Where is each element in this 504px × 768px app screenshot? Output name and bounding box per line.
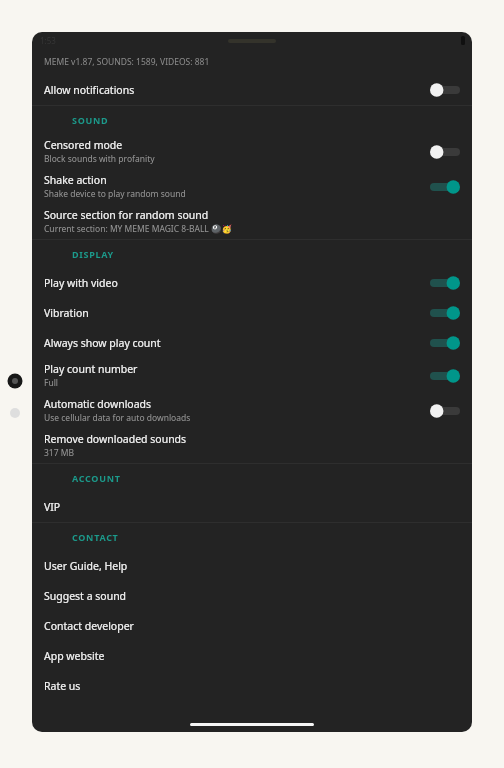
staticText: 317 MB bbox=[44, 447, 75, 459]
button[interactable]: Always show play count bbox=[32, 328, 472, 358]
button[interactable]: Toggle Allow notifications bbox=[426, 78, 464, 102]
button[interactable]: Source section for random sound bbox=[32, 204, 472, 239]
staticText: Current section: MY MEME MAGIC 8-BALL 🎱🥳 bbox=[44, 223, 233, 235]
button[interactable]: Automatic downloads bbox=[32, 393, 472, 428]
staticText: 1:53 bbox=[40, 35, 56, 46]
staticText: Play count number bbox=[44, 362, 138, 376]
button[interactable]: Toggle Vibration bbox=[426, 301, 464, 325]
staticText: Source section for random sound bbox=[44, 208, 209, 222]
staticText: ACCOUNT bbox=[72, 472, 121, 484]
staticText: VIP bbox=[44, 500, 61, 514]
staticText: CONTACT bbox=[72, 531, 119, 543]
staticText: Suggest a sound bbox=[44, 589, 127, 603]
staticText: Shake action bbox=[44, 173, 107, 187]
button[interactable]: Censored mode bbox=[32, 134, 472, 169]
staticText: Shake device to play random sound bbox=[44, 188, 186, 200]
button[interactable]: Rate us bbox=[32, 671, 472, 701]
staticText: DISPLAY bbox=[72, 248, 114, 260]
staticText: Vibration bbox=[44, 306, 89, 320]
staticText: Rate us bbox=[44, 679, 81, 693]
staticText: Automatic downloads bbox=[44, 397, 152, 411]
staticText: Remove downloaded sounds bbox=[44, 432, 187, 446]
button[interactable]: Contact developer bbox=[32, 611, 472, 641]
staticText: Play with video bbox=[44, 276, 118, 290]
staticText: MEME v1.87, SOUNDS: 1589, VIDEOS: 881 bbox=[44, 56, 210, 68]
staticText: Allow notifications bbox=[44, 83, 135, 97]
button[interactable]: Shake action bbox=[32, 169, 472, 204]
staticText: Block sounds with profanity bbox=[44, 153, 155, 165]
button[interactable]: Play with video bbox=[32, 268, 472, 298]
button[interactable]: Remove downloaded sounds bbox=[32, 428, 472, 463]
button[interactable]: User Guide, Help bbox=[32, 551, 472, 581]
button[interactable]: VIP bbox=[32, 492, 472, 522]
button[interactable]: Play count number bbox=[32, 358, 472, 393]
button[interactable]: Toggle Automatic downloads bbox=[426, 399, 464, 423]
staticText: Full bbox=[44, 377, 59, 389]
button[interactable]: Vibration bbox=[32, 298, 472, 328]
staticText: Censored mode bbox=[44, 138, 123, 152]
button[interactable]: Toggle Play count number bbox=[426, 364, 464, 388]
staticText: SOUND bbox=[72, 114, 109, 126]
button[interactable]: Toggle Shake action bbox=[426, 175, 464, 199]
button[interactable]: Suggest a sound bbox=[32, 581, 472, 611]
button[interactable]: Toggle Always show play count bbox=[426, 331, 464, 355]
button[interactable]: App website bbox=[32, 641, 472, 671]
staticText: Contact developer bbox=[44, 619, 134, 633]
button[interactable]: Toggle Play with video bbox=[426, 271, 464, 295]
button[interactable]: Toggle Censored mode bbox=[426, 140, 464, 164]
staticText: Use cellular data for auto downloads bbox=[44, 412, 191, 424]
staticText: User Guide, Help bbox=[44, 559, 128, 573]
staticText: App website bbox=[44, 649, 105, 663]
staticText: Always show play count bbox=[44, 336, 161, 350]
button[interactable]: Allow notifications bbox=[32, 75, 472, 105]
